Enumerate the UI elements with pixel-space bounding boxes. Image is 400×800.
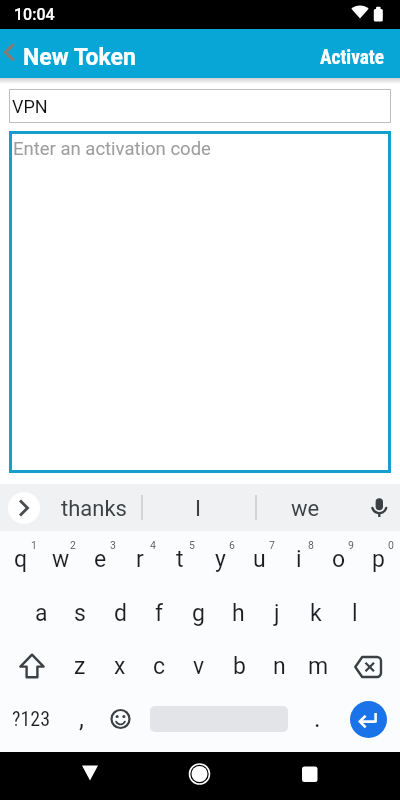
button[interactable]: [335, 586, 375, 641]
button[interactable]: [100, 586, 140, 641]
button[interactable]: [100, 641, 140, 696]
staticText: New Token: [23, 44, 136, 71]
button[interactable]: [344, 641, 392, 696]
staticText: t: [176, 546, 184, 573]
button[interactable]: [176, 752, 224, 800]
staticText: 7: [269, 539, 275, 551]
staticText: we: [291, 496, 320, 522]
staticText: a: [35, 600, 48, 627]
button[interactable]: [257, 586, 297, 641]
staticText: c: [153, 653, 166, 680]
staticText: .: [314, 704, 321, 733]
staticText: e: [94, 546, 107, 573]
staticText: i: [296, 546, 302, 573]
button[interactable]: VPN: [9, 89, 391, 123]
button[interactable]: [60, 586, 100, 641]
staticText: I: [195, 496, 201, 522]
button[interactable]: .: [252, 696, 382, 740]
staticText: 1: [31, 539, 37, 551]
button[interactable]: [21, 586, 61, 641]
button[interactable]: thanks: [29, 487, 159, 531]
staticText: q: [14, 546, 28, 573]
staticText: 6: [229, 539, 235, 551]
button[interactable]: Enter an activation code: [9, 131, 391, 473]
staticText: VPN: [12, 96, 48, 117]
button[interactable]: [66, 752, 114, 800]
staticText: 3: [110, 539, 116, 551]
button[interactable]: [60, 641, 100, 696]
button[interactable]: [120, 531, 160, 586]
staticText: g: [192, 600, 205, 627]
button[interactable]: [41, 531, 81, 586]
staticText: thanks: [61, 496, 127, 522]
staticText: k: [310, 600, 322, 627]
staticText: s: [74, 600, 86, 627]
button[interactable]: ?123: [0, 696, 96, 740]
button[interactable]: [139, 641, 179, 696]
button[interactable]: [239, 531, 279, 586]
staticText: x: [114, 653, 126, 680]
staticText: f: [155, 600, 163, 627]
button[interactable]: ,: [16, 696, 146, 740]
button[interactable]: [139, 586, 179, 641]
button[interactable]: [218, 586, 258, 641]
button[interactable]: [178, 586, 218, 641]
button[interactable]: [100, 698, 141, 740]
button[interactable]: [8, 641, 56, 696]
button[interactable]: [160, 531, 200, 586]
button[interactable]: [0, 29, 22, 78]
staticText: d: [114, 600, 127, 627]
button[interactable]: [1, 531, 41, 586]
staticText: l: [352, 600, 358, 627]
staticText: y: [215, 546, 226, 573]
button[interactable]: [259, 641, 299, 696]
button[interactable]: [219, 641, 259, 696]
button[interactable]: [296, 586, 336, 641]
staticText: 0: [388, 539, 394, 551]
button[interactable]: [200, 531, 240, 586]
staticText: h: [232, 600, 245, 627]
staticText: v: [193, 653, 205, 680]
button[interactable]: [286, 752, 334, 800]
button[interactable]: [179, 641, 219, 696]
staticText: p: [372, 546, 385, 573]
button[interactable]: [310, 29, 400, 78]
button[interactable]: I: [133, 487, 263, 531]
staticText: 8: [308, 539, 314, 551]
staticText: Enter an activation code: [13, 138, 211, 160]
staticText: o: [332, 546, 346, 573]
staticText: ,: [79, 704, 84, 733]
staticText: 5: [189, 539, 195, 551]
staticText: ?123: [12, 707, 51, 730]
button[interactable]: [350, 701, 387, 738]
staticText: n: [273, 653, 286, 680]
button[interactable]: [358, 531, 398, 586]
button[interactable]: [80, 531, 120, 586]
staticText: w: [52, 546, 70, 573]
staticText: u: [253, 546, 266, 573]
button[interactable]: [279, 531, 319, 586]
button[interactable]: [298, 641, 338, 696]
staticText: 2: [70, 539, 76, 551]
button[interactable]: [319, 531, 359, 586]
staticText: b: [233, 653, 246, 680]
staticText: z: [74, 653, 86, 680]
staticText: r: [136, 546, 144, 573]
staticText: 4: [150, 539, 156, 551]
button[interactable]: [8, 492, 40, 524]
staticText: j: [274, 600, 280, 627]
staticText: 9: [348, 539, 354, 551]
button[interactable]: we: [240, 487, 370, 531]
staticText: m: [308, 653, 329, 680]
staticText: Activate: [320, 46, 384, 69]
staticText: 10:04: [14, 5, 55, 24]
